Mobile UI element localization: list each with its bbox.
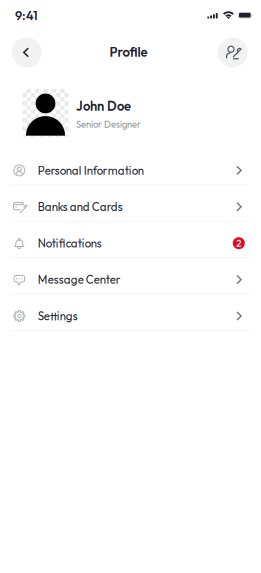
button[interactable]: Edit profile (218, 37, 248, 67)
staticText: Message Center (38, 272, 121, 287)
staticText: Profile (109, 44, 147, 60)
staticText: Senior Designer (76, 118, 141, 130)
staticText: Notifications (38, 236, 102, 250)
staticText: John Doe (76, 98, 131, 114)
button[interactable]: Personal Information (0, 149, 261, 185)
button[interactable]: Settings (0, 295, 261, 331)
staticText: Personal Information (38, 163, 144, 178)
staticText: Banks and Cards (38, 200, 123, 214)
button[interactable]: Notifications (0, 222, 261, 258)
staticText: Settings (38, 309, 78, 323)
button[interactable]: Message Center (0, 258, 261, 295)
button[interactable]: Back (12, 37, 42, 67)
button[interactable]: Banks and Cards (0, 185, 261, 222)
staticText: 9:41 (15, 7, 38, 23)
staticText: 2 (236, 237, 241, 249)
